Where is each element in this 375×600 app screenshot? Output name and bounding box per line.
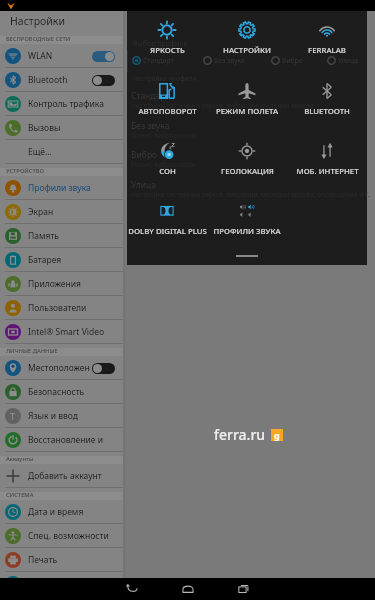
button[interactable]: РЕЖИМ ПОЛЕТА bbox=[207, 69, 287, 113]
staticText: Спец. возможности bbox=[28, 530, 115, 542]
staticText: УСТРОЙСТВО bbox=[6, 167, 44, 175]
button[interactable]: Контроль трафика bbox=[0, 92, 124, 116]
button[interactable]: Вызовы bbox=[0, 116, 124, 140]
staticText: Стандарт bbox=[131, 90, 170, 102]
staticText: Улица bbox=[338, 56, 358, 65]
staticText: Дата и время bbox=[28, 506, 115, 518]
staticText: ГЕОЛОКАЦИЯ bbox=[221, 166, 274, 177]
staticText: Bluetooth bbox=[28, 74, 92, 86]
staticText: Добавить аккаунт bbox=[28, 470, 115, 482]
button[interactable]: Ещё... bbox=[0, 140, 124, 164]
staticText: Вибро bbox=[282, 56, 303, 65]
staticText: Ещё... bbox=[28, 146, 115, 158]
button[interactable]: Добавить аккаунт bbox=[0, 464, 124, 488]
button[interactable]: Home bbox=[160, 578, 216, 600]
staticText: Настройка системных звуков, вибрации, ме… bbox=[131, 101, 314, 110]
staticText: Без звука bbox=[131, 120, 170, 132]
button[interactable]: FERRALAB bbox=[287, 8, 367, 52]
staticText: ferra.ru bbox=[214, 425, 266, 444]
button[interactable]: DOLBY DIGITAL PLUS bbox=[127, 189, 207, 233]
button[interactable]: Пользователи bbox=[0, 296, 124, 320]
staticText: СОН bbox=[159, 166, 176, 177]
staticText: BLUETOOTH bbox=[304, 106, 350, 117]
button[interactable]: WLAN bbox=[0, 44, 124, 68]
staticText: Батарея bbox=[28, 254, 115, 266]
button[interactable]: ПРОФИЛИ ЗВУКА bbox=[207, 189, 287, 233]
button[interactable]: Печать bbox=[0, 548, 124, 572]
staticText: FERRALAB bbox=[308, 45, 346, 56]
button[interactable]: Безопасность bbox=[0, 380, 124, 404]
button[interactable]: Recent apps bbox=[216, 578, 272, 600]
button[interactable]: МОБ. ИНТЕРНЕТ bbox=[287, 129, 367, 173]
staticText: СИСТЕМА bbox=[6, 491, 34, 499]
staticText: WLAN bbox=[28, 50, 92, 62]
staticText: БЕСПРОВОДНЫЕ СЕТИ bbox=[6, 35, 71, 43]
staticText: Профили звука bbox=[28, 182, 115, 194]
staticText: Стандарт bbox=[143, 56, 174, 65]
button[interactable] bbox=[92, 51, 115, 62]
staticText: ПРОФИЛИ ЗВУКА bbox=[213, 226, 281, 237]
button[interactable]: T bbox=[0, 404, 124, 428]
button[interactable]: Дата и время bbox=[0, 500, 124, 524]
button[interactable]: Батарея bbox=[0, 248, 124, 272]
button[interactable] bbox=[92, 75, 115, 86]
staticText: Без звука bbox=[214, 56, 245, 65]
button[interactable] bbox=[92, 363, 115, 374]
staticText: Пользователи bbox=[28, 302, 115, 314]
staticText: Аккаунты bbox=[6, 455, 34, 463]
staticText: Настройка профиля bbox=[133, 74, 197, 83]
staticText: Память bbox=[28, 230, 115, 242]
staticText: g bbox=[274, 429, 280, 441]
button[interactable]: ГЕОЛОКАЦИЯ bbox=[207, 129, 287, 173]
staticText: Контроль трафика bbox=[28, 98, 115, 110]
button[interactable]: Местоположение bbox=[0, 356, 124, 380]
button[interactable]: НАСТРОЙКИ bbox=[207, 8, 287, 52]
staticText: Печать bbox=[28, 554, 115, 566]
button[interactable]: BLUETOOTH bbox=[287, 69, 367, 113]
staticText: Выбор профиля bbox=[133, 39, 188, 49]
button[interactable]: Приложения bbox=[0, 272, 124, 296]
button[interactable]: Спец. возможности bbox=[0, 524, 124, 548]
staticText: Восстановление и сброс bbox=[28, 434, 115, 446]
staticText: Вызовы bbox=[28, 122, 115, 134]
staticText: DOLBY DIGITAL PLUS bbox=[128, 226, 207, 237]
staticText: Местоположение bbox=[28, 362, 92, 374]
button[interactable]: Экран bbox=[0, 200, 124, 224]
staticText: Настройка системных звуков, вибрации, ме… bbox=[131, 190, 371, 199]
button[interactable]: СОН bbox=[127, 129, 207, 173]
button[interactable]: Back bbox=[104, 578, 160, 600]
staticText: ЛИЧНЫЕ ДАННЫЕ bbox=[6, 347, 58, 355]
staticText: Язык и ввод bbox=[28, 410, 115, 422]
button[interactable]: АВТОПОВОРОТ bbox=[127, 69, 207, 113]
staticText: Intel® Smart Video bbox=[28, 326, 115, 338]
staticText: Экран bbox=[28, 206, 115, 218]
button[interactable]: О планшете bbox=[0, 572, 124, 596]
staticText: Настройки bbox=[10, 14, 65, 28]
button[interactable]: Bluetooth bbox=[0, 68, 124, 92]
button[interactable]: Профили звука bbox=[0, 176, 124, 200]
button[interactable]: Восстановление и сброс bbox=[0, 428, 124, 452]
staticText: T bbox=[10, 410, 16, 422]
button[interactable]: Intel® Smart Video bbox=[0, 320, 124, 344]
button[interactable]: Память bbox=[0, 224, 124, 248]
staticText: Вибро bbox=[131, 149, 158, 161]
button[interactable]: ЯРКОСТЬ bbox=[127, 8, 207, 52]
staticText: АВТОПОВОРОТ bbox=[138, 106, 197, 117]
staticText: Приложения bbox=[28, 278, 115, 290]
staticText: НАСТРОЙКИ bbox=[223, 45, 271, 56]
staticText: ЯРКОСТЬ bbox=[150, 45, 185, 56]
staticText: РЕЖИМ ПОЛЕТА bbox=[216, 106, 278, 117]
staticText: МОБ. ИНТЕРНЕТ bbox=[296, 166, 359, 177]
staticText: Безопасность bbox=[28, 386, 115, 398]
staticText: Улица bbox=[131, 179, 157, 191]
